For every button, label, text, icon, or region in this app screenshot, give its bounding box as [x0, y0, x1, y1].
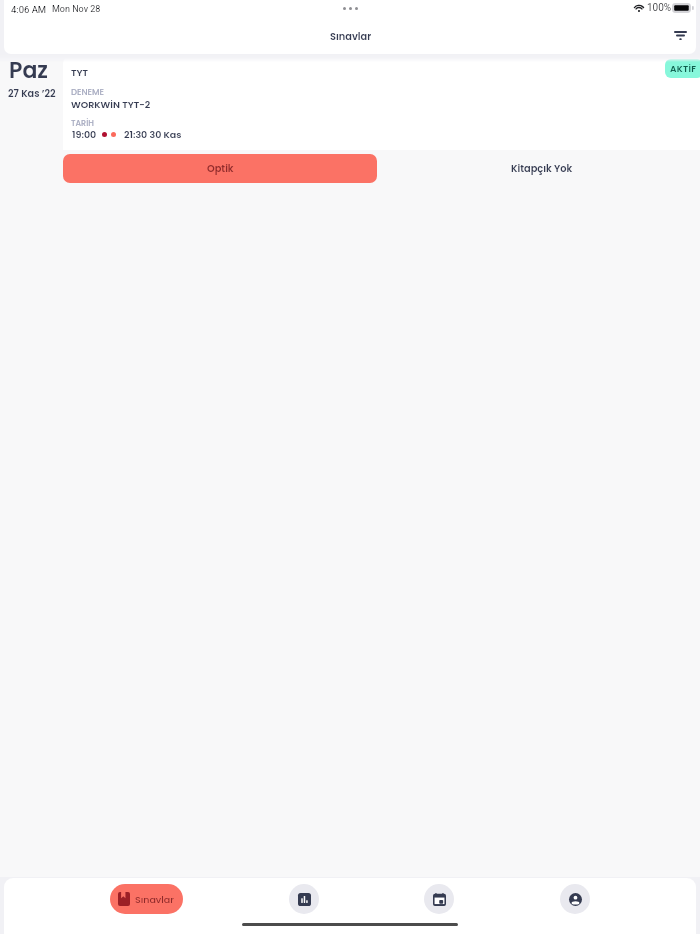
staticText: 19:00 — [72, 128, 97, 141]
staticText: 100% — [647, 2, 672, 14]
button[interactable] — [63, 55, 700, 150]
staticText: WORKWİN TYT-2 — [71, 98, 151, 111]
staticText: TARİH — [71, 118, 94, 129]
staticText: Mon Nov 28 — [52, 4, 101, 15]
staticText: 27 Kas ’22 — [8, 87, 56, 101]
staticText: DENEME — [71, 86, 105, 98]
button[interactable]: Calendar — [424, 884, 454, 914]
button[interactable]: Sınavlar — [110, 884, 183, 914]
button[interactable]: Profile — [560, 884, 590, 914]
button[interactable]: Kitapçık Yok — [377, 154, 700, 183]
staticText: Sınavlar — [135, 893, 174, 906]
staticText: 21:30 30 Kas — [124, 128, 182, 141]
button[interactable]: Statistics — [289, 884, 319, 914]
staticText: AKTİF — [670, 63, 697, 76]
staticText: Kitapçık Yok — [511, 162, 573, 176]
staticText: 4:06 AM — [11, 4, 47, 15]
staticText: Paz — [9, 55, 48, 86]
staticText: TYT — [71, 66, 89, 79]
button[interactable]: Filter — [666, 21, 694, 49]
button[interactable]: Optik — [63, 154, 377, 183]
staticText: Optik — [207, 162, 234, 176]
staticText: Sınavlar — [330, 30, 372, 44]
